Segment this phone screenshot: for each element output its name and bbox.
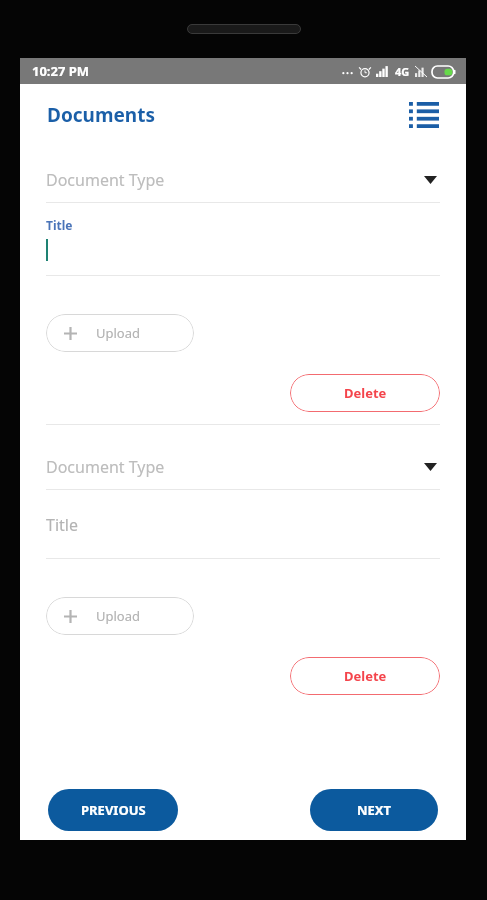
button[interactable]: Delete [290,374,440,412]
staticText: 4G [395,64,410,79]
staticText: Upload [96,324,141,342]
staticText: Document Type [46,456,165,478]
button[interactable]: Document Type [46,158,440,202]
staticText: Documents [47,102,155,128]
staticText: Document Type [46,169,165,191]
staticText: 10:27 PM [32,62,90,80]
button[interactable]: Title [46,217,440,275]
button[interactable]: Title [46,504,440,546]
staticText: Delete [344,384,387,402]
button[interactable]: NEXT [310,789,438,831]
button[interactable]: List view [404,95,444,135]
button[interactable]: Upload [46,314,194,352]
staticText: Upload [96,607,141,625]
staticText: Title [46,217,73,233]
staticText: PREVIOUS [81,801,146,819]
staticText: Title [46,514,78,536]
staticText: NEXT [357,801,392,819]
button[interactable]: Upload [46,597,194,635]
button[interactable]: PREVIOUS [48,789,178,831]
button[interactable]: Delete [290,657,440,695]
staticText: Delete [344,667,387,685]
button[interactable]: Document Type [46,445,440,489]
